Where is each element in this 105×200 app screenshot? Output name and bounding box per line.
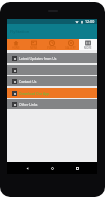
- staticText: HOME: [12, 46, 20, 50]
- staticText: GALLERY: [65, 46, 76, 50]
- button[interactable]: [7, 65, 97, 75]
- button[interactable]: Download Our App: [7, 88, 97, 98]
- staticText: 12:00: [85, 19, 95, 24]
- staticText: NEWS: [30, 46, 38, 50]
- button[interactable]: EVENTS: [43, 39, 61, 50]
- button[interactable]: Recents: [72, 163, 82, 173]
- button[interactable]: HOME: [7, 39, 25, 50]
- button[interactable]: Back: [22, 163, 32, 173]
- button[interactable]: NEWS: [25, 39, 43, 50]
- button[interactable]: Latest Updates from Us: [7, 53, 97, 63]
- staticText: Latest Updates from Us: [19, 56, 57, 61]
- button[interactable]: MORE: [79, 39, 97, 50]
- button[interactable]: Other Links: [7, 99, 97, 109]
- staticText: Other Links: [19, 102, 38, 107]
- staticText: FlyStation: [10, 29, 30, 35]
- staticText: Download Our App: [19, 91, 50, 96]
- button[interactable]: Home: [47, 163, 57, 173]
- staticText: Contact Us: [19, 79, 37, 84]
- button[interactable]: GALLERY: [61, 39, 79, 50]
- staticText: EVENTS: [47, 46, 57, 50]
- button[interactable]: Contact Us: [7, 76, 97, 86]
- staticText: MORE: [84, 46, 92, 50]
